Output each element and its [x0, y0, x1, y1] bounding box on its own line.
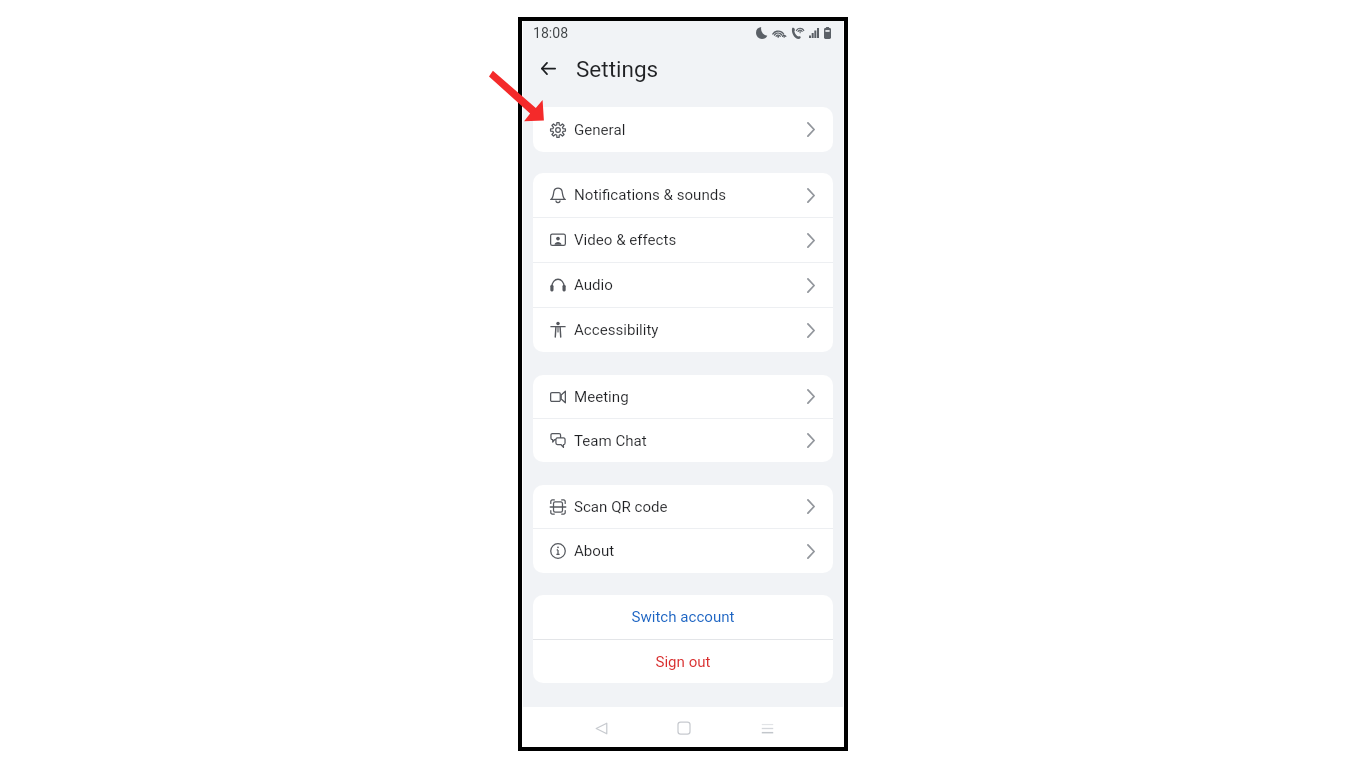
button[interactable]: Accessibility [533, 308, 833, 352]
button[interactable]: Video & effects [533, 218, 833, 262]
staticText: Notifications & sounds [574, 186, 727, 204]
staticText: Team Chat [574, 432, 647, 450]
button[interactable]: General [533, 107, 833, 152]
staticText: Audio [574, 276, 613, 294]
button[interactable]: Home [666, 711, 702, 745]
staticText: About [574, 542, 615, 560]
staticText: Switch account [631, 608, 735, 626]
button[interactable]: Switch account [533, 595, 833, 639]
button[interactable]: About [533, 529, 833, 573]
staticText: Settings [576, 56, 659, 82]
button[interactable]: Recent apps [749, 711, 785, 745]
button[interactable]: Meeting [533, 375, 833, 418]
button[interactable]: Notifications & sounds [533, 173, 833, 217]
staticText: Meeting [574, 388, 629, 406]
button[interactable]: Team Chat [533, 419, 833, 462]
staticText: 18:08 [533, 25, 569, 42]
staticText: Video & effects [574, 231, 677, 249]
staticText: General [574, 121, 626, 139]
button[interactable]: Scan QR code [533, 485, 833, 528]
staticText: Accessibility [574, 321, 659, 339]
button[interactable]: Audio [533, 263, 833, 307]
button[interactable]: Sign out [533, 640, 833, 683]
button[interactable]: Back [537, 57, 559, 79]
staticText: Scan QR code [574, 498, 668, 516]
button[interactable]: Back [583, 711, 619, 745]
staticText: Sign out [655, 653, 711, 671]
